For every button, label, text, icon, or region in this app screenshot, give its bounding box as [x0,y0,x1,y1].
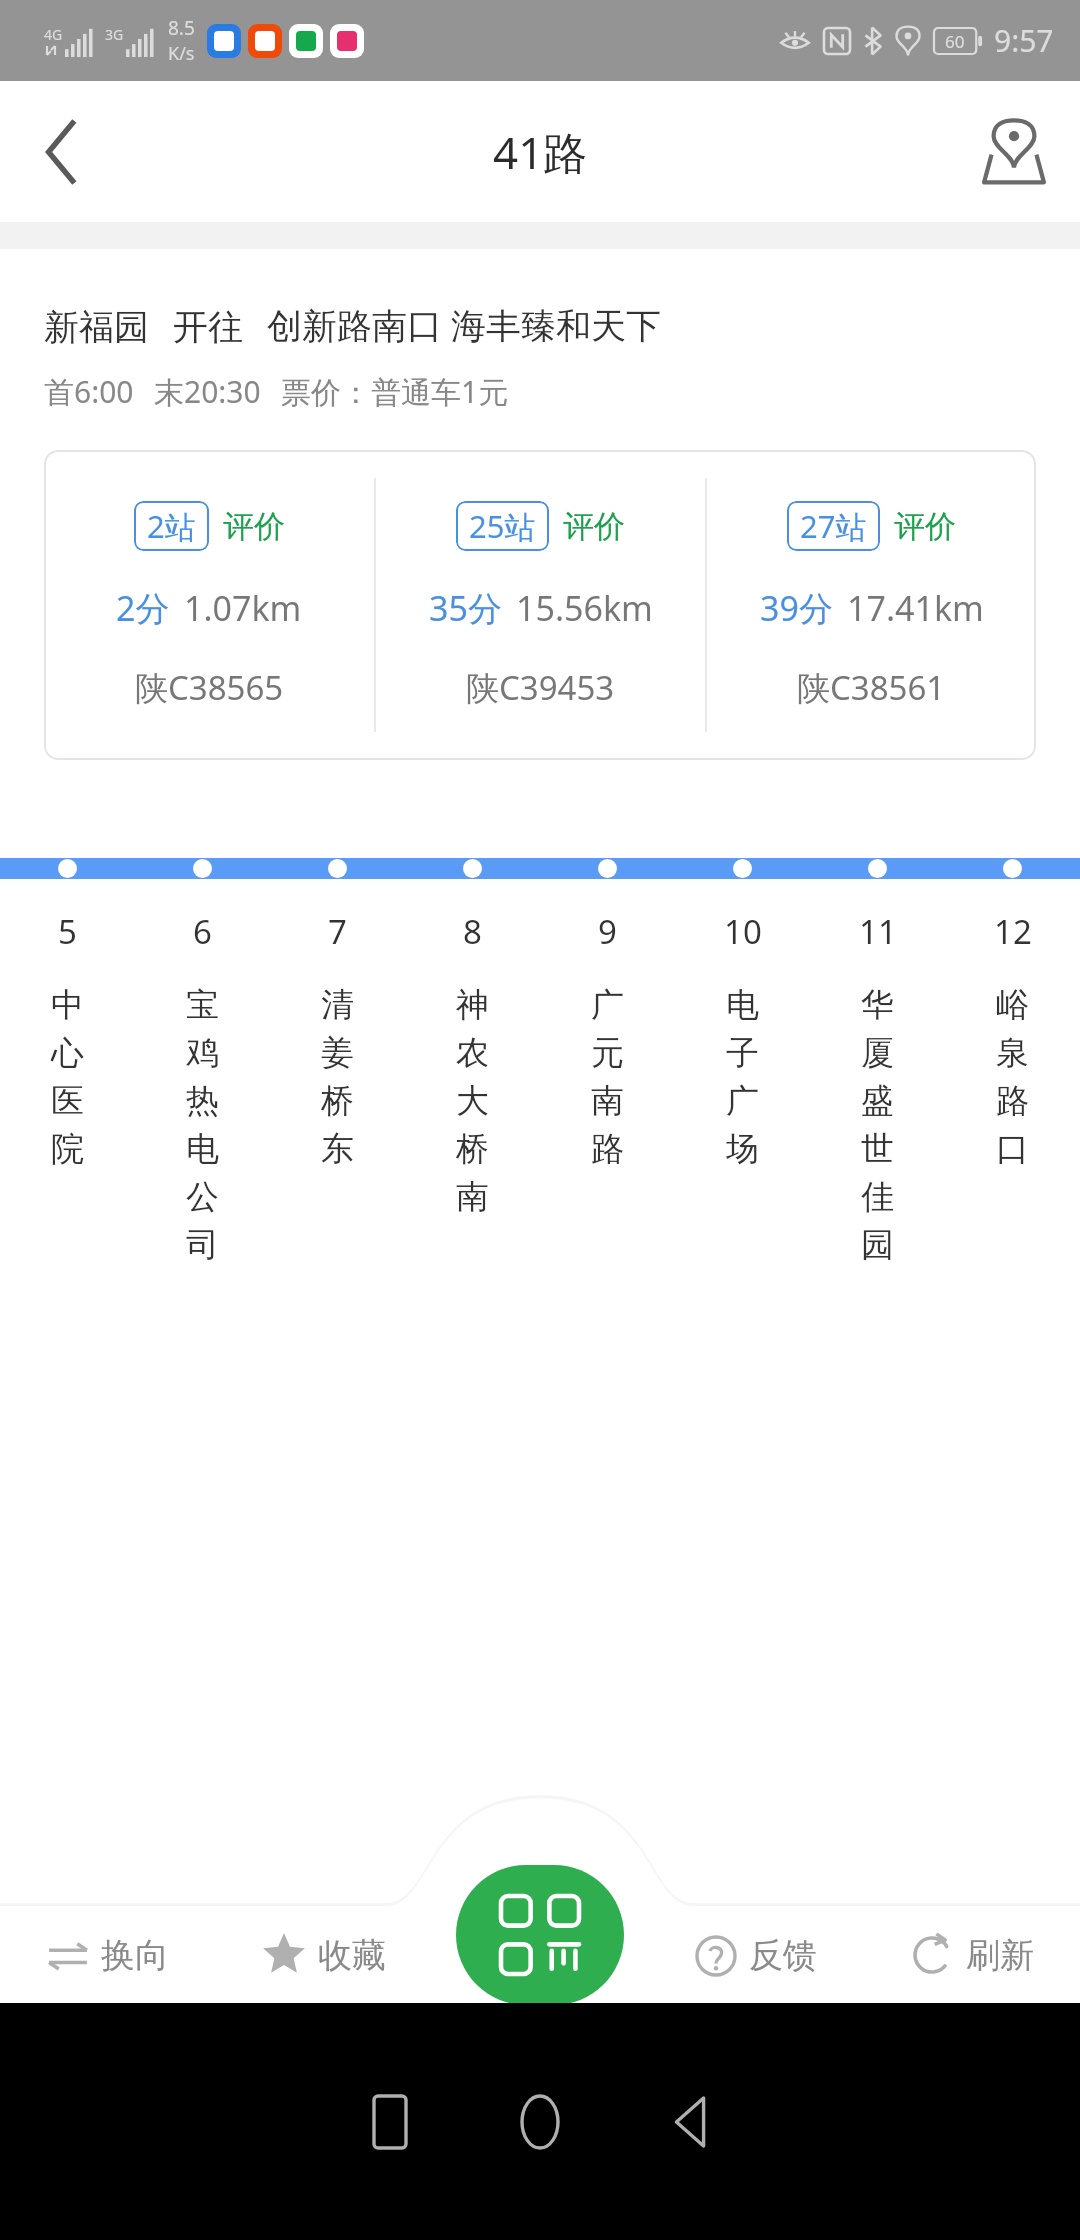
staticText: 末20:30 [154,371,261,412]
button[interactable]: 12 [945,909,1080,1170]
staticText: 3G [105,25,124,44]
button[interactable]: 27站 [707,450,1036,760]
staticText: 39分 [760,585,833,631]
staticText: 首6:00 [44,371,134,412]
staticText: 陕C39453 [466,665,615,710]
button[interactable]: Map [966,104,1062,200]
staticText: 27站 [800,505,867,547]
staticText: 中 心 医 院 [51,984,84,1170]
staticText: 新福园 [44,305,149,349]
staticText: 评价 [223,507,285,546]
staticText: 2站 [147,505,196,547]
staticText: 11 [859,909,897,954]
staticText: 60 [945,30,965,53]
button[interactable]: 5 [0,909,135,1170]
button[interactable]: Back [615,2047,765,2197]
staticText: 10 [724,909,762,954]
staticText: 8.5 [168,15,195,41]
staticText: 广 元 南 路 [591,984,624,1170]
button[interactable]: Back [12,104,108,200]
staticText: 12 [994,909,1032,954]
staticText: 票价：普通车1元 [281,371,509,412]
staticText: 7 [328,909,347,954]
staticText: 峪 泉 路 口 [996,984,1029,1170]
button[interactable]: 10 [675,909,810,1170]
button[interactable]: Scan QR code [456,1865,624,2005]
staticText: 6 [193,909,212,954]
button[interactable]: Home [465,2047,615,2197]
staticText: 25站 [469,505,536,547]
button[interactable]: 7 [270,909,405,1170]
button[interactable]: 25站 [376,450,705,760]
staticText: 反馈 [749,1934,817,1977]
button[interactable]: 11 [810,909,945,1266]
button[interactable]: 9 [540,909,675,1170]
button[interactable]: 2站 [44,450,374,760]
staticText: 收藏 [318,1934,386,1977]
staticText: 35分 [429,585,502,631]
button[interactable]: 刷新 [864,1933,1080,1977]
staticText: 41路 [493,122,588,182]
staticText: 神 农 大 桥 南 [456,984,489,1218]
staticText: 5 [58,909,77,954]
staticText: 创新路南口 海丰臻和天下 [267,301,662,349]
staticText: 9:57 [994,20,1054,61]
staticText: 4G [44,25,63,44]
staticText: 评价 [563,507,625,546]
staticText: 刷新 [966,1934,1034,1977]
staticText: 1.07km [184,585,302,631]
staticText: 换向 [101,1934,169,1977]
button[interactable]: 收藏 [216,1933,432,1977]
button[interactable]: 换向 [0,1934,216,1977]
staticText: 8 [463,909,482,954]
staticText: 电 子 广 场 [726,984,759,1170]
staticText: 开往 [173,305,243,349]
button[interactable]: 8 [405,909,540,1218]
staticText: K/s [168,41,195,66]
staticText: 陕C38561 [797,665,946,710]
button[interactable]: 反馈 [648,1934,864,1977]
button[interactable]: 6 [135,909,270,1266]
staticText: 17.41km [847,585,984,631]
staticText: 评价 [894,507,956,546]
button[interactable]: Recent apps [315,2047,465,2197]
staticText: 华 厦 盛 世 佳 园 [861,984,894,1266]
staticText: 宝 鸡 热 电 公 司 [186,984,219,1266]
staticText: 9 [598,909,617,954]
staticText: 15.56km [516,585,653,631]
staticText: 陕C38565 [135,665,284,710]
staticText: 2分 [116,585,170,631]
staticText: 清 姜 桥 东 [321,984,354,1170]
